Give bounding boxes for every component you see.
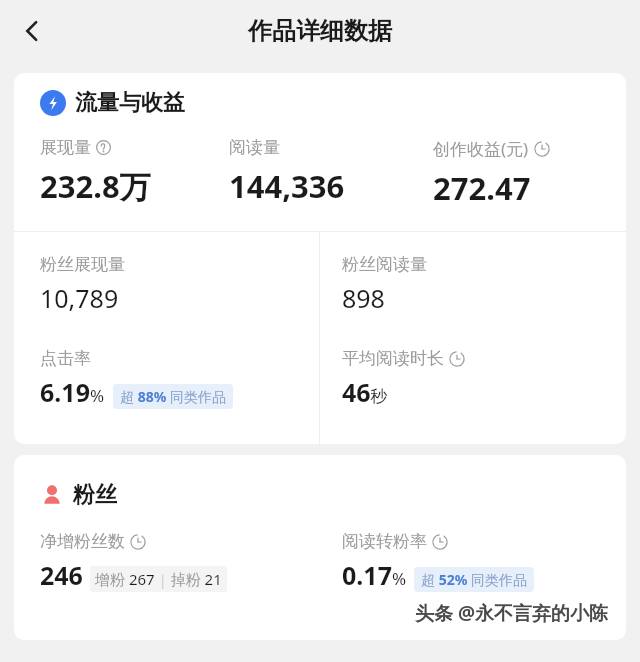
staticText: 超 52% 同类作品 xyxy=(421,570,527,589)
staticText: 头条 @永不言弃的小陈 xyxy=(14,600,608,626)
staticText: 平均阅读时长 xyxy=(342,348,444,369)
staticText: 232.8万 xyxy=(40,165,151,207)
staticText: 246 xyxy=(40,558,83,592)
staticText: 46秒 xyxy=(342,375,388,409)
staticText: 净增粉丝数 xyxy=(40,531,125,552)
button[interactable]: 粉丝 xyxy=(40,481,117,509)
staticText: 阅读量 xyxy=(229,137,280,158)
staticText: 粉丝阅读量 xyxy=(342,254,427,275)
staticText: 272.47 xyxy=(433,167,531,209)
staticText: 超 88% 同类作品 xyxy=(120,387,226,406)
button[interactable]: 流量与收益 xyxy=(40,89,185,117)
staticText: 点击率 xyxy=(40,348,91,369)
button[interactable]: 超 52% 同类作品 xyxy=(421,570,527,589)
staticText: 898 xyxy=(342,281,385,315)
staticText: 6.19% xyxy=(40,375,105,409)
staticText: 粉丝展现量 xyxy=(40,254,125,275)
button[interactable]: Back xyxy=(8,7,56,55)
staticText: 流量与收益 xyxy=(75,89,185,117)
staticText: 0.17% xyxy=(342,558,407,592)
staticText: 创作收益(元) xyxy=(433,137,529,160)
staticText: 展现量 xyxy=(40,137,91,158)
button[interactable]: 超 88% 同类作品 xyxy=(120,387,226,406)
staticText: 作品详细数据 xyxy=(248,16,392,46)
staticText: 144,336 xyxy=(229,165,345,207)
staticText: 增粉 267 | 掉粉 21 xyxy=(95,569,222,589)
staticText: 阅读转粉率 xyxy=(342,531,427,552)
staticText: 粉丝 xyxy=(73,481,117,509)
staticText: 10,789 xyxy=(40,281,119,315)
